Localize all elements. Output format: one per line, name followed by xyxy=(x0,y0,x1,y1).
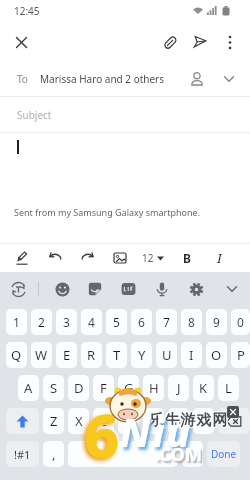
button[interactable]: . xyxy=(182,441,203,467)
button[interactable] xyxy=(49,276,75,302)
button[interactable]: M xyxy=(193,408,214,434)
button[interactable]: 5 xyxy=(106,309,127,335)
staticText: B xyxy=(183,250,191,266)
button[interactable]: N xyxy=(168,408,189,434)
button[interactable]: J xyxy=(168,375,189,401)
button[interactable]: I xyxy=(206,245,232,271)
staticText: K xyxy=(199,379,208,397)
button[interactable] xyxy=(107,245,133,271)
button[interactable] xyxy=(182,64,212,94)
staticText: V xyxy=(125,412,133,430)
button[interactable]: R xyxy=(81,342,102,368)
button[interactable]: U xyxy=(156,342,177,368)
button[interactable] xyxy=(185,27,215,57)
button[interactable] xyxy=(155,27,185,57)
button[interactable] xyxy=(183,276,209,302)
button[interactable]: 4 xyxy=(81,309,102,335)
button[interactable] xyxy=(212,62,246,96)
button[interactable] xyxy=(82,276,108,302)
button[interactable] xyxy=(6,408,39,434)
button[interactable]: 6 xyxy=(131,309,152,335)
button[interactable] xyxy=(0,22,42,62)
button[interactable]: E xyxy=(56,342,77,368)
button[interactable]: 2 xyxy=(31,309,52,335)
button[interactable]: 12 xyxy=(140,245,166,271)
button[interactable]: W xyxy=(31,342,52,368)
button[interactable]: P xyxy=(231,342,250,368)
staticText: 6 xyxy=(84,392,120,475)
staticText: O xyxy=(211,346,222,364)
staticText: .COM xyxy=(155,442,202,467)
staticText: 12:45 xyxy=(14,4,40,18)
button[interactable]: , xyxy=(43,441,64,467)
staticText: A xyxy=(24,379,33,397)
staticText: T xyxy=(113,346,121,364)
button[interactable]: S xyxy=(43,375,64,401)
staticText: 乐牛游戏网 xyxy=(147,411,227,430)
button[interactable]: H xyxy=(143,375,164,401)
button[interactable]: A xyxy=(18,375,39,401)
staticText: 乐牛游戏网 xyxy=(148,411,228,430)
button[interactable]: Subject xyxy=(0,97,250,132)
button[interactable] xyxy=(115,276,141,302)
button[interactable] xyxy=(68,441,178,467)
button[interactable]: G xyxy=(118,375,139,401)
button[interactable]: O xyxy=(206,342,227,368)
button[interactable]: V xyxy=(118,408,139,434)
button[interactable]: 3 xyxy=(56,309,77,335)
button[interactable]: X xyxy=(68,408,89,434)
button[interactable]: 8 xyxy=(181,309,202,335)
staticText: 6 xyxy=(86,393,122,476)
staticText: 3 xyxy=(63,314,70,330)
staticText: B xyxy=(149,412,158,430)
staticText: !#1 xyxy=(14,447,31,462)
staticText: 8 xyxy=(188,314,195,330)
button[interactable] xyxy=(218,408,250,434)
button[interactable]: I xyxy=(181,342,202,368)
button[interactable] xyxy=(219,276,245,302)
staticText: 乐牛游戏网 xyxy=(149,412,229,431)
staticText: 乐牛游戏网 xyxy=(147,410,227,429)
button[interactable]: !#1 xyxy=(6,441,39,467)
button[interactable] xyxy=(215,27,245,57)
staticText: 1 xyxy=(13,314,20,330)
button[interactable]: D xyxy=(68,375,89,401)
button[interactable]: To xyxy=(0,62,250,96)
staticText: C xyxy=(99,412,108,430)
staticText: D xyxy=(74,379,84,397)
button[interactable]: F xyxy=(93,375,114,401)
staticText: I xyxy=(217,249,222,267)
button[interactable]: Y xyxy=(131,342,152,368)
staticText: N xyxy=(174,412,184,430)
button[interactable] xyxy=(42,245,68,271)
staticText: 6 xyxy=(83,393,119,476)
staticText: F xyxy=(100,379,107,397)
staticText: 5 xyxy=(113,314,120,330)
button[interactable]: Done xyxy=(207,441,240,467)
button[interactable]: B xyxy=(143,408,164,434)
button[interactable]: Z xyxy=(43,408,64,434)
button[interactable]: B xyxy=(174,245,200,271)
staticText: 7 xyxy=(163,314,170,330)
button[interactable]: K xyxy=(193,375,214,401)
staticText: Done xyxy=(211,447,237,461)
button[interactable]: Q xyxy=(6,342,27,368)
staticText: R xyxy=(87,346,96,364)
button[interactable]: 9 xyxy=(206,309,227,335)
button[interactable] xyxy=(5,276,31,302)
button[interactable]: T xyxy=(106,342,127,368)
staticText: M xyxy=(198,412,210,430)
button[interactable]: 1 xyxy=(6,309,27,335)
button[interactable] xyxy=(9,245,35,271)
staticText: H xyxy=(149,379,159,397)
button[interactable]: L xyxy=(218,375,239,401)
button[interactable] xyxy=(149,276,175,302)
button[interactable]: 7 xyxy=(156,309,177,335)
staticText: 12 xyxy=(142,251,154,265)
staticText: Marissa Haro and 2 others xyxy=(40,72,165,86)
button[interactable] xyxy=(75,245,101,271)
button[interactable]: 0 xyxy=(231,309,250,335)
staticText: Y xyxy=(138,346,146,364)
button[interactable]: C xyxy=(93,408,114,434)
staticText: 4 xyxy=(88,314,95,330)
